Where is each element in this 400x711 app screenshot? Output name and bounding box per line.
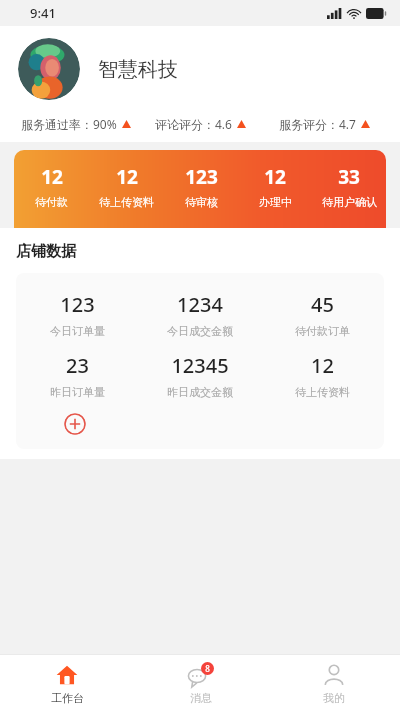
staticText: 待付款订单 [295,324,350,338]
button[interactable]: 45 [261,291,384,338]
button[interactable]: Add data card [64,413,86,435]
staticText: 店铺数据 [16,242,76,261]
staticText: 123 [60,291,95,318]
staticText: 9:41 [30,4,56,22]
staticText: 待审核 [185,195,218,209]
staticText: 评论评分： [155,117,215,132]
staticText: 33 [338,164,360,190]
staticText: 待上传资料 [99,195,154,209]
staticText: 12 [116,164,138,190]
staticText: 4.7 [339,116,356,132]
button[interactable]: 12 [261,352,384,399]
staticText: 我的 [323,691,345,705]
staticText: 23 [66,352,89,379]
button[interactable]: 服务通过率： [14,116,138,132]
staticText: 12 [264,164,286,190]
staticText: 昨日成交金额 [167,385,233,399]
button[interactable]: 我的 [267,655,400,711]
button[interactable]: 1234 [138,291,261,338]
button[interactable]: 23 [16,352,138,399]
staticText: 12 [311,352,334,379]
staticText: 12345 [171,352,229,379]
staticText: 12 [41,164,63,190]
staticText: 1234 [177,291,223,318]
staticText: 消息 [190,691,212,705]
staticText: 今日成交金额 [167,324,233,338]
button[interactable]: 12345 [138,352,261,399]
staticText: 待上传资料 [295,385,350,399]
button[interactable]: 工作台 [0,655,134,711]
staticText: 办理中 [259,195,292,209]
staticText: 服务通过率： [21,117,93,132]
button[interactable]: 8 [134,655,267,711]
staticText: 4.6 [215,116,232,132]
button[interactable]: 123 [16,291,138,338]
button[interactable]: 12 [89,164,164,228]
button[interactable]: 评论评分： [138,116,262,132]
staticText: 待付款 [35,195,68,209]
staticText: 123 [185,164,218,190]
staticText: 8 [205,663,210,674]
button[interactable]: 服务评分： [262,116,386,132]
button[interactable] [18,38,80,100]
staticText: 45 [311,291,334,318]
staticText: 智慧科技 [98,57,178,82]
staticText: 90% [93,116,117,132]
staticText: 今日订单量 [50,324,105,338]
staticText: 服务评分： [279,117,339,132]
button[interactable]: 12 [238,164,312,228]
staticText: 昨日订单量 [50,385,105,399]
button[interactable]: 33 [312,164,386,228]
button[interactable]: 12 [14,164,89,228]
staticText: 待用户确认 [322,195,377,209]
button[interactable]: 123 [164,164,238,228]
staticText: 工作台 [51,691,84,705]
